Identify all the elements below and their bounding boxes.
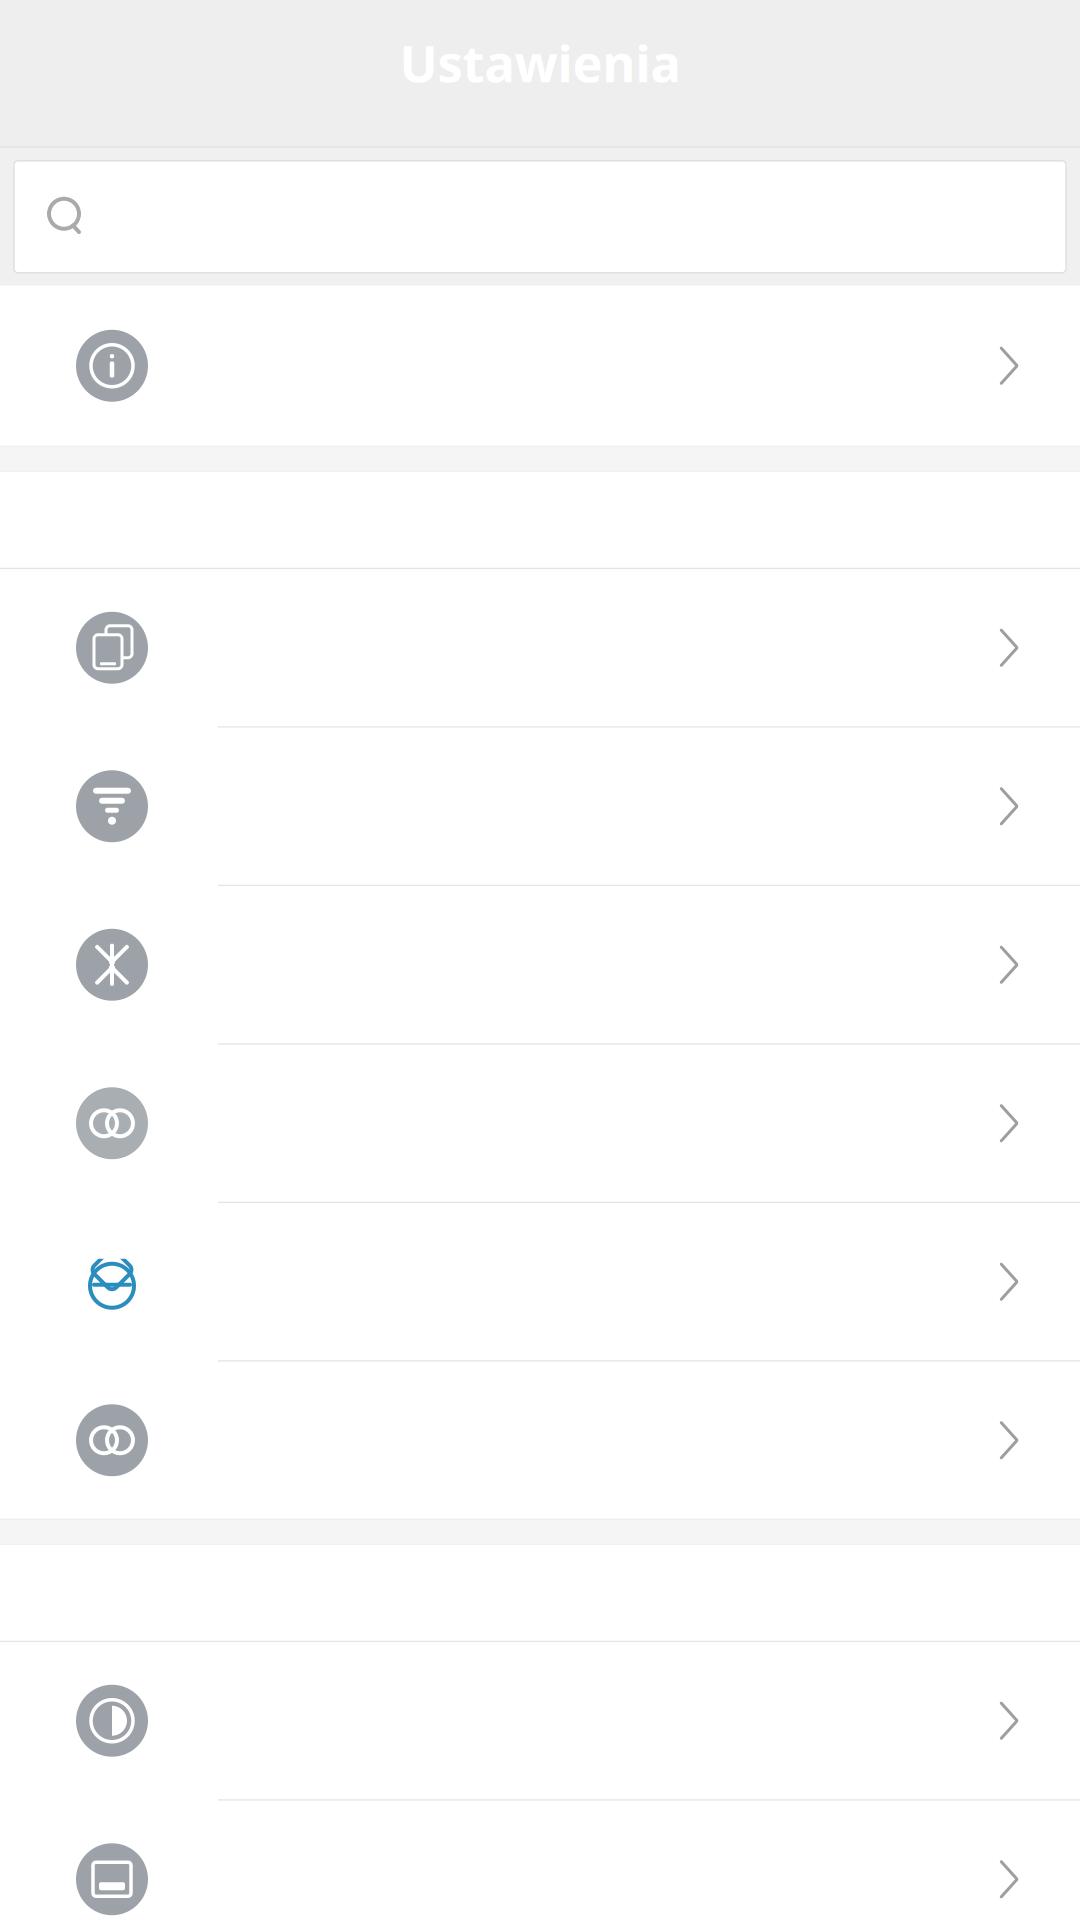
staticText: Ustawienia <box>399 29 680 96</box>
button[interactable]: Wi-Fi <box>0 728 1080 885</box>
button[interactable]: Ekran <box>0 1642 1080 1799</box>
button[interactable]: Sieci komórkowe <box>0 1045 1080 1202</box>
button[interactable]: O telefonie <box>0 286 1080 446</box>
button[interactable]: Karty SIM <box>0 569 1080 726</box>
button[interactable]: Search <box>14 161 1066 273</box>
button[interactable]: Bluetooth <box>0 886 1080 1043</box>
button[interactable]: Tryb oszczędzania <box>0 1203 1080 1360</box>
button[interactable]: Więcej połączeń <box>0 1362 1080 1519</box>
button[interactable]: Tapeta <box>0 1801 1080 1920</box>
